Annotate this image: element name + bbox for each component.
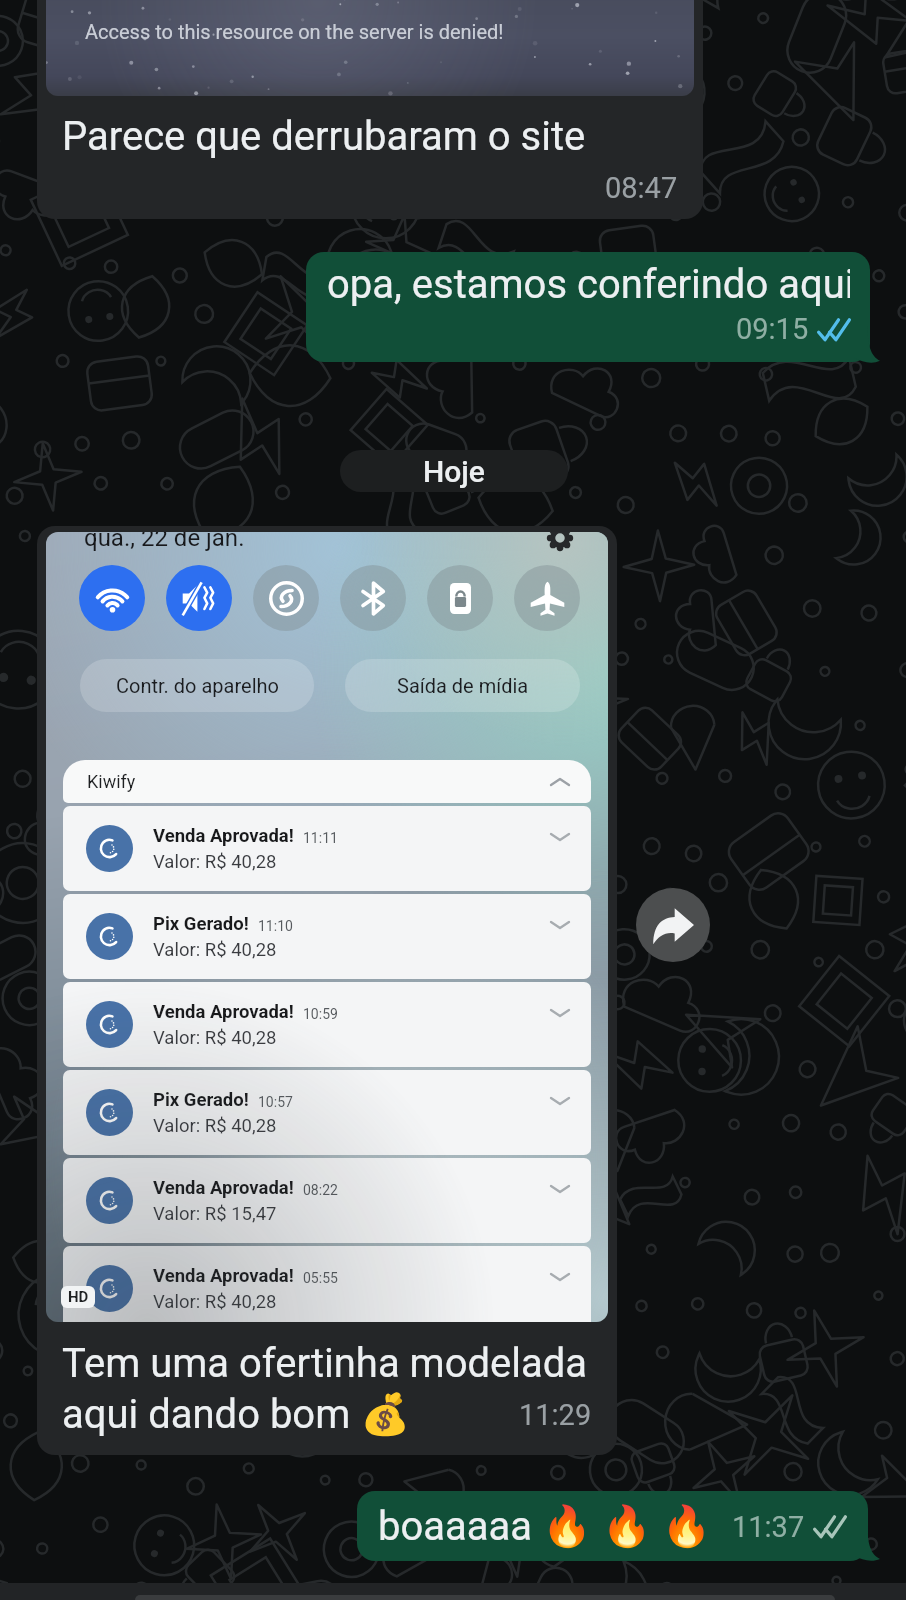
staticText: 10:57	[258, 1094, 293, 1110]
button[interactable]: qua., 22 de jan.	[37, 526, 617, 1455]
button[interactable]: Quick setting	[79, 565, 145, 631]
staticText: 11:29	[519, 1398, 592, 1432]
staticText: Valor: R$ 40,28	[153, 1027, 277, 1049]
staticText: Valor: R$ 40,28	[153, 939, 277, 961]
staticText: Pix Gerado!	[153, 1089, 249, 1111]
staticText: Valor: R$ 40,28	[153, 1291, 277, 1313]
staticText: 08:22	[303, 1182, 338, 1198]
button[interactable]: Hoje	[340, 450, 568, 492]
staticText: qua., 22 de jan.	[84, 532, 245, 552]
staticText: 08:47	[605, 171, 678, 205]
staticText: Valor: R$ 40,28	[153, 1115, 277, 1137]
staticText: Contr. do aparelho	[116, 674, 279, 697]
staticText: HD	[68, 1288, 89, 1306]
button[interactable]: Pix Gerado!	[63, 894, 591, 979]
staticText: boaaaaa 🔥 🔥 🔥	[378, 1503, 712, 1550]
staticText: Valor: R$ 40,28	[153, 851, 277, 873]
staticText: Valor: R$ 15,47	[153, 1203, 277, 1225]
button[interactable]: Venda Aprovada!	[63, 982, 591, 1067]
button[interactable]: boaaaaa 🔥 🔥 🔥	[357, 1491, 868, 1561]
staticText: Venda Aprovada!	[153, 1177, 294, 1199]
staticText: Parece que derrubaram o site	[62, 113, 586, 160]
staticText: Hoje	[423, 454, 485, 489]
staticText: aqui dando bom 💰	[62, 1391, 410, 1438]
button[interactable]: Quick setting	[166, 565, 232, 631]
staticText: Saída de mídia	[397, 674, 529, 697]
staticText: Kiwify	[87, 771, 136, 792]
staticText: Venda Aprovada!	[153, 1001, 294, 1023]
button[interactable]: Kiwify	[63, 760, 591, 803]
button[interactable]: Access to this resource on the server is…	[37, 0, 703, 219]
staticText: Access to this resource on the server is…	[85, 20, 504, 43]
staticText: 11:11	[303, 830, 338, 846]
staticText: opa, estamos conferindo aqui	[327, 261, 850, 308]
button[interactable]: Venda Aprovada!	[63, 1158, 591, 1243]
staticText: 05:55	[303, 1270, 338, 1286]
staticText: Tem uma ofertinha modelada	[62, 1340, 588, 1387]
staticText: 11:10	[258, 918, 293, 934]
staticText: Venda Aprovada!	[153, 825, 294, 847]
button[interactable]: Contr. do aparelho	[80, 659, 314, 712]
button[interactable]: Quick setting	[253, 565, 319, 631]
staticText: 11:37	[732, 1510, 805, 1544]
staticText: 10:59	[303, 1006, 338, 1022]
button[interactable]: Quick setting	[340, 565, 406, 631]
button[interactable]: opa, estamos conferindo aqui	[306, 252, 870, 362]
button[interactable]: Quick setting	[514, 565, 580, 631]
button[interactable]: Pix Gerado!	[63, 1070, 591, 1155]
staticText: Pix Gerado!	[153, 913, 249, 935]
button[interactable]: Venda Aprovada!	[63, 806, 591, 891]
button[interactable]: Saída de mídia	[345, 659, 580, 712]
button[interactable]: Forward	[636, 888, 710, 962]
button[interactable]: Venda Aprovada!	[63, 1246, 591, 1322]
staticText: Venda Aprovada!	[153, 1265, 294, 1287]
staticText: 09:15	[736, 312, 809, 346]
button[interactable]: Quick setting	[427, 565, 493, 631]
